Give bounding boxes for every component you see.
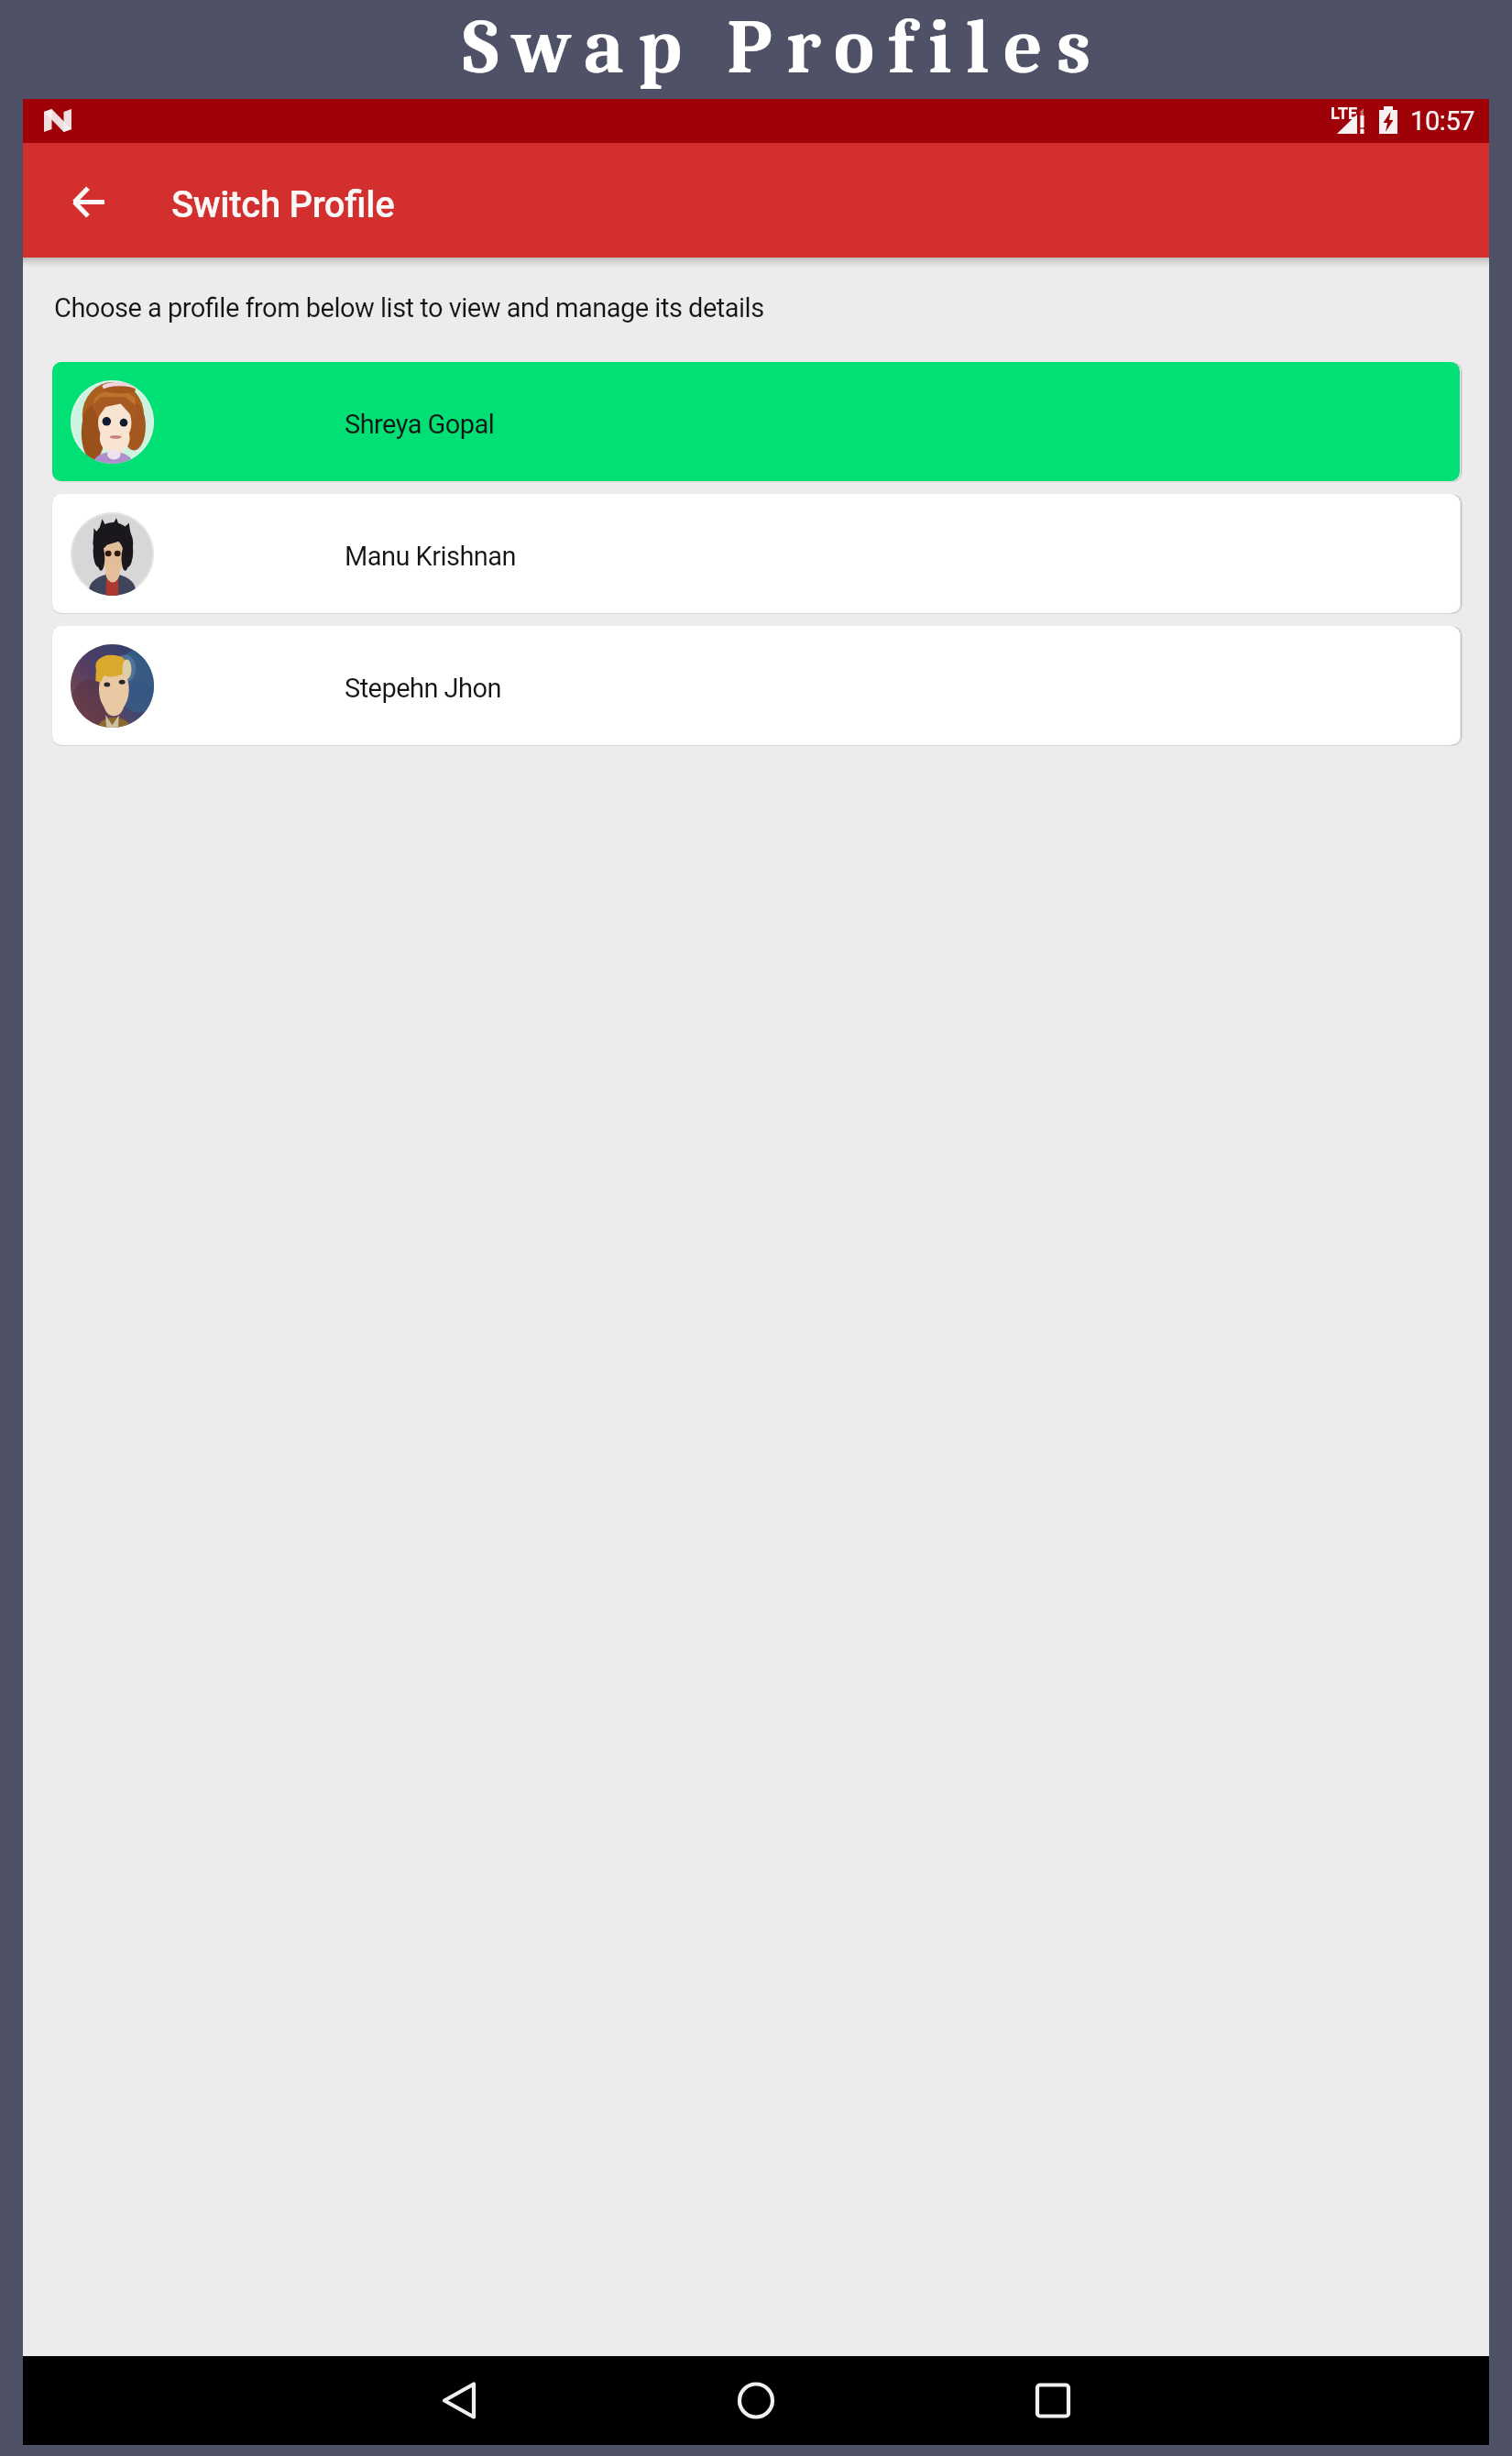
- staticText: Stepehn Jhon: [345, 673, 501, 704]
- staticText: LTE: [1331, 104, 1358, 123]
- button[interactable]: Home: [716, 2356, 796, 2445]
- staticText: Swap Profiles: [463, 4, 1105, 91]
- button[interactable]: Manu Krishnan: [52, 494, 1460, 613]
- staticText: Choose a profile from below list to view…: [54, 292, 764, 323]
- button[interactable]: Back: [51, 170, 112, 231]
- staticText: Switch Profile: [171, 183, 395, 226]
- button[interactable]: Recent apps: [1013, 2356, 1093, 2445]
- staticText: Manu Krishnan: [345, 541, 516, 572]
- button[interactable]: Shreya Gopal: [52, 362, 1460, 481]
- button[interactable]: Back: [404, 2356, 485, 2445]
- button[interactable]: Stepehn Jhon: [52, 626, 1460, 745]
- staticText: Shreya Gopal: [345, 409, 495, 440]
- staticText: 10:57: [1410, 105, 1475, 137]
